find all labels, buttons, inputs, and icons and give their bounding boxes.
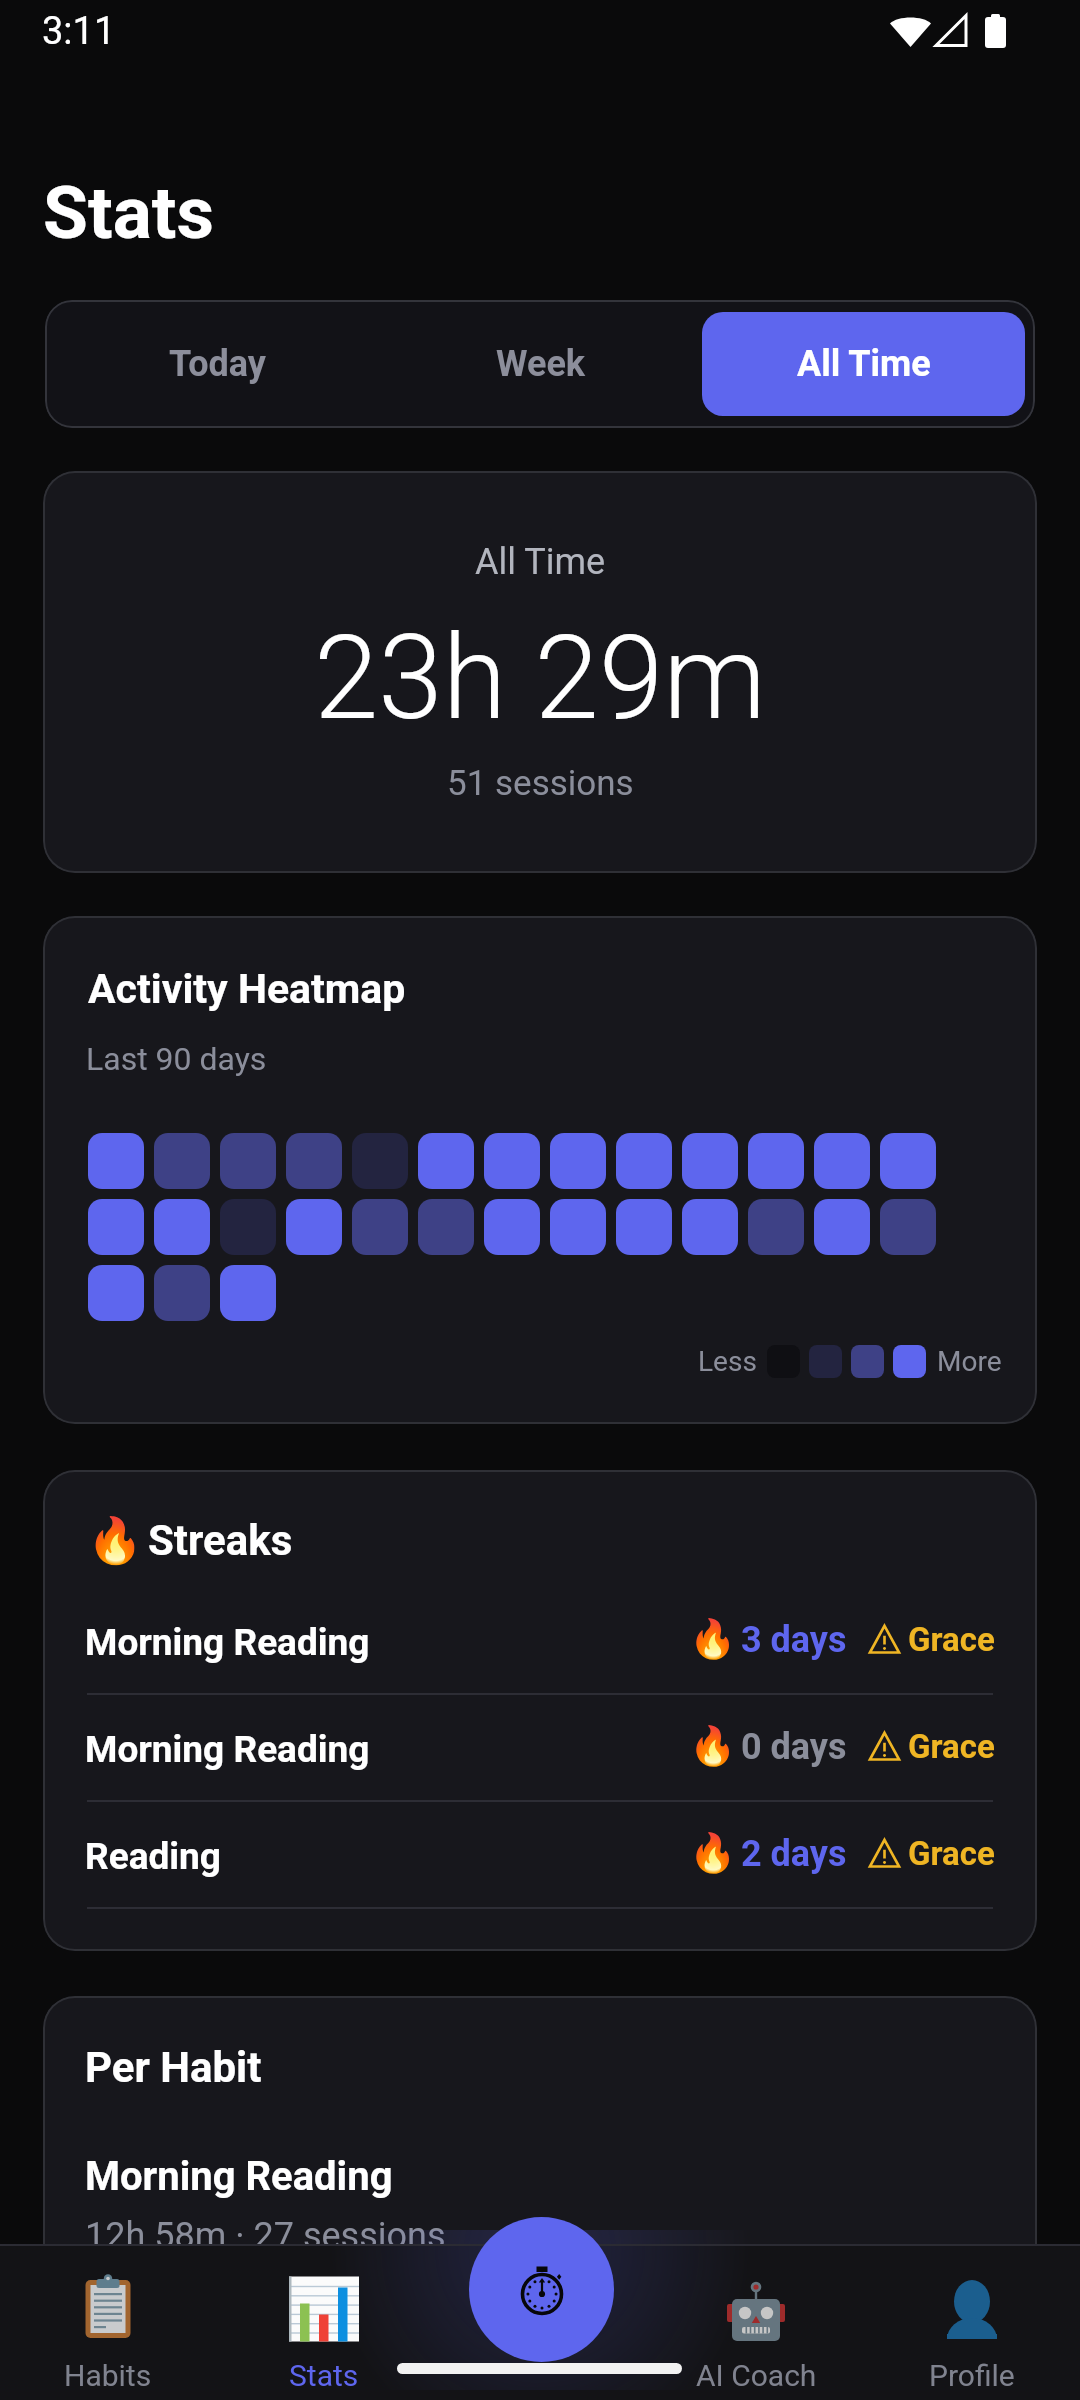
staticText: Streaks bbox=[148, 1516, 293, 1565]
button[interactable]: Week bbox=[379, 312, 702, 416]
staticText: Profile bbox=[929, 2358, 1015, 2393]
staticText: Per Habit bbox=[85, 2043, 262, 2092]
staticText: Grace bbox=[908, 1620, 995, 1659]
staticText: Morning Reading bbox=[85, 1728, 370, 1771]
staticText: 2 days bbox=[741, 1833, 847, 1875]
staticText: 3:11 bbox=[42, 9, 116, 54]
staticText: 🔥 bbox=[689, 1831, 737, 1876]
staticText: 12h 58m · 27 sessions bbox=[85, 2215, 446, 2257]
button[interactable]: Today bbox=[55, 312, 379, 416]
staticText: Today bbox=[169, 343, 266, 385]
staticText: 23h 29m bbox=[314, 610, 767, 746]
staticText: AI Coach bbox=[696, 2358, 817, 2393]
staticText: Less bbox=[698, 1345, 757, 1378]
staticText: 0 days bbox=[741, 1726, 847, 1768]
button[interactable]: Morning Reading bbox=[43, 1695, 1037, 1802]
button[interactable]: All Time bbox=[702, 312, 1025, 416]
staticText: 3 days bbox=[741, 1619, 847, 1661]
staticText: Activity Heatmap bbox=[88, 965, 406, 1013]
staticText: 🔥 bbox=[689, 1617, 737, 1662]
button[interactable]: Profile bbox=[864, 2244, 1080, 2400]
staticText: All Time bbox=[797, 343, 931, 385]
staticText: Week bbox=[496, 343, 586, 385]
staticText: Grace bbox=[908, 1727, 995, 1766]
staticText: Reading bbox=[85, 1835, 221, 1878]
staticText: Morning Reading bbox=[85, 2153, 393, 2200]
button[interactable]: Morning Reading bbox=[43, 1588, 1037, 1695]
staticText: Stats bbox=[289, 2358, 359, 2393]
staticText: Stats bbox=[43, 170, 214, 256]
button[interactable]: AI Coach bbox=[648, 2244, 864, 2400]
button[interactable]: Stats bbox=[216, 2244, 432, 2400]
staticText: 51 sessions bbox=[447, 763, 634, 804]
staticText: Habits bbox=[64, 2358, 152, 2393]
staticText: 🔥 bbox=[87, 1514, 144, 1567]
button[interactable]: Reading bbox=[43, 1802, 1037, 1909]
staticText: Morning Reading bbox=[85, 1621, 370, 1664]
staticText: Last 90 days bbox=[86, 1040, 267, 1078]
staticText: 🔥 bbox=[689, 1724, 737, 1769]
staticText: More bbox=[937, 1345, 1002, 1378]
button[interactable]: Habits bbox=[0, 2244, 216, 2400]
staticText: Grace bbox=[908, 1834, 995, 1873]
button[interactable]: Start timer bbox=[469, 2217, 614, 2362]
staticText: All Time bbox=[475, 541, 606, 583]
